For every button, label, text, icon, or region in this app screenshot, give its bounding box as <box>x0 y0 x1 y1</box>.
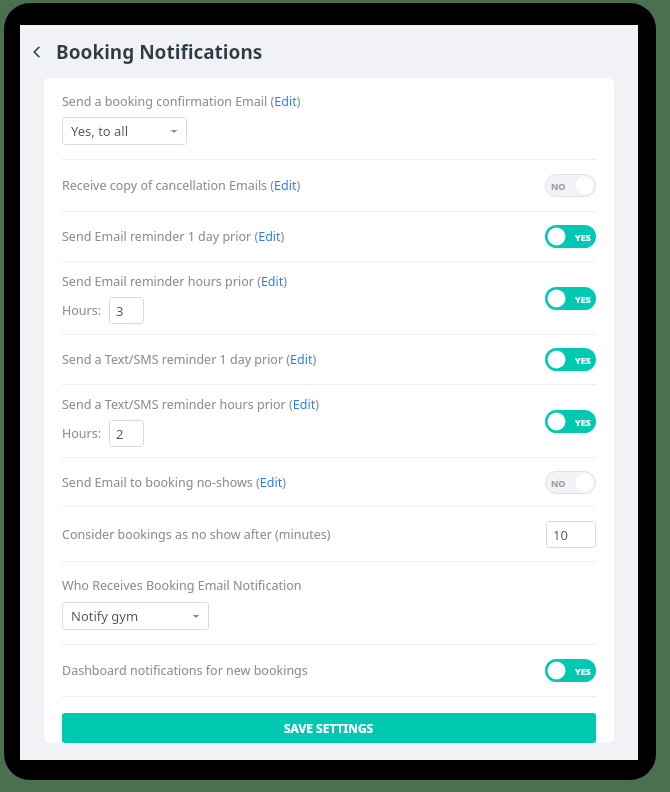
staticText: Consider bookings as no show after (minu… <box>62 526 331 543</box>
button[interactable]: Yes, to all <box>62 117 187 145</box>
staticText: Send Email to booking no-shows (Edit) <box>62 474 286 491</box>
button[interactable]: Disabled toggle <box>545 174 596 197</box>
staticText: 3 <box>116 302 124 320</box>
button[interactable]: Enabled toggle <box>545 225 596 248</box>
button[interactable]: Enabled toggle <box>545 410 596 433</box>
staticText: 10 <box>553 526 568 544</box>
staticText: YES <box>575 354 591 366</box>
staticText: YES <box>575 416 591 428</box>
button[interactable]: Enabled toggle <box>545 348 596 371</box>
staticText: NO <box>551 180 566 192</box>
staticText: Booking Notifications <box>56 39 263 65</box>
staticText: Hours: <box>62 302 102 319</box>
button[interactable]: Disabled toggle <box>545 471 596 494</box>
staticText: Hours: <box>62 425 102 442</box>
button[interactable]: 2 <box>109 420 144 447</box>
staticText: YES <box>575 665 591 677</box>
staticText: Send a Text/SMS reminder 1 day prior (Ed… <box>62 351 317 368</box>
staticText: Notify gym <box>71 607 139 625</box>
staticText: 2 <box>116 425 124 443</box>
staticText: Send a booking confirmation Email (Edit) <box>62 93 301 110</box>
button[interactable]: Back <box>24 39 50 65</box>
staticText: Send a Text/SMS reminder hours prior (Ed… <box>62 396 319 413</box>
staticText: Who Receives Booking Email Notification <box>62 577 302 594</box>
button[interactable]: SAVE SETTINGS <box>62 713 596 743</box>
button[interactable]: 10 <box>546 521 596 548</box>
staticText: SAVE SETTINGS <box>284 720 374 736</box>
staticText: NO <box>551 477 566 489</box>
button[interactable]: Enabled toggle <box>545 659 596 682</box>
staticText: Receive copy of cancellation Emails (Edi… <box>62 177 301 194</box>
staticText: Yes, to all <box>71 122 129 140</box>
button[interactable]: 3 <box>109 297 144 324</box>
staticText: YES <box>575 231 591 243</box>
staticText: Send Email reminder hours prior (Edit) <box>62 273 288 290</box>
button[interactable]: Notify gym <box>62 602 209 630</box>
staticText: YES <box>575 293 591 305</box>
staticText: Send Email reminder 1 day prior (Edit) <box>62 228 285 245</box>
staticText: Dashboard notifications for new bookings <box>62 662 308 679</box>
button[interactable]: Enabled toggle <box>545 287 596 310</box>
